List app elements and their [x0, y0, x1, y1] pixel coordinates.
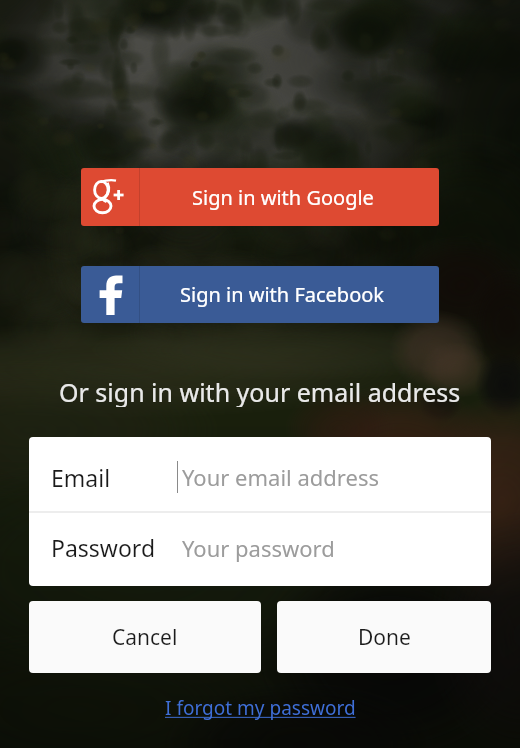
staticText: Done — [358, 623, 411, 652]
staticText: Or sign in with your email address — [59, 375, 461, 407]
button[interactable]: Cancel — [29, 601, 261, 673]
button[interactable]: Google — [81, 168, 439, 226]
button[interactable]: Password — [29, 513, 491, 586]
staticText: Your password — [182, 533, 335, 563]
staticText: Email — [51, 462, 111, 493]
button[interactable]: Email — [29, 437, 491, 511]
button[interactable]: Done — [277, 601, 491, 673]
staticText: Sign in with Google — [192, 184, 374, 211]
staticText: Sign in with Facebook — [180, 281, 385, 308]
staticText: Password — [51, 532, 156, 563]
other: Google — [93, 179, 128, 215]
staticText: Cancel — [112, 623, 178, 652]
button[interactable]: I forgot my password — [165, 695, 356, 721]
button[interactable]: Facebook — [81, 266, 439, 323]
other: Facebook — [97, 275, 123, 315]
staticText: Your email address — [182, 462, 379, 492]
